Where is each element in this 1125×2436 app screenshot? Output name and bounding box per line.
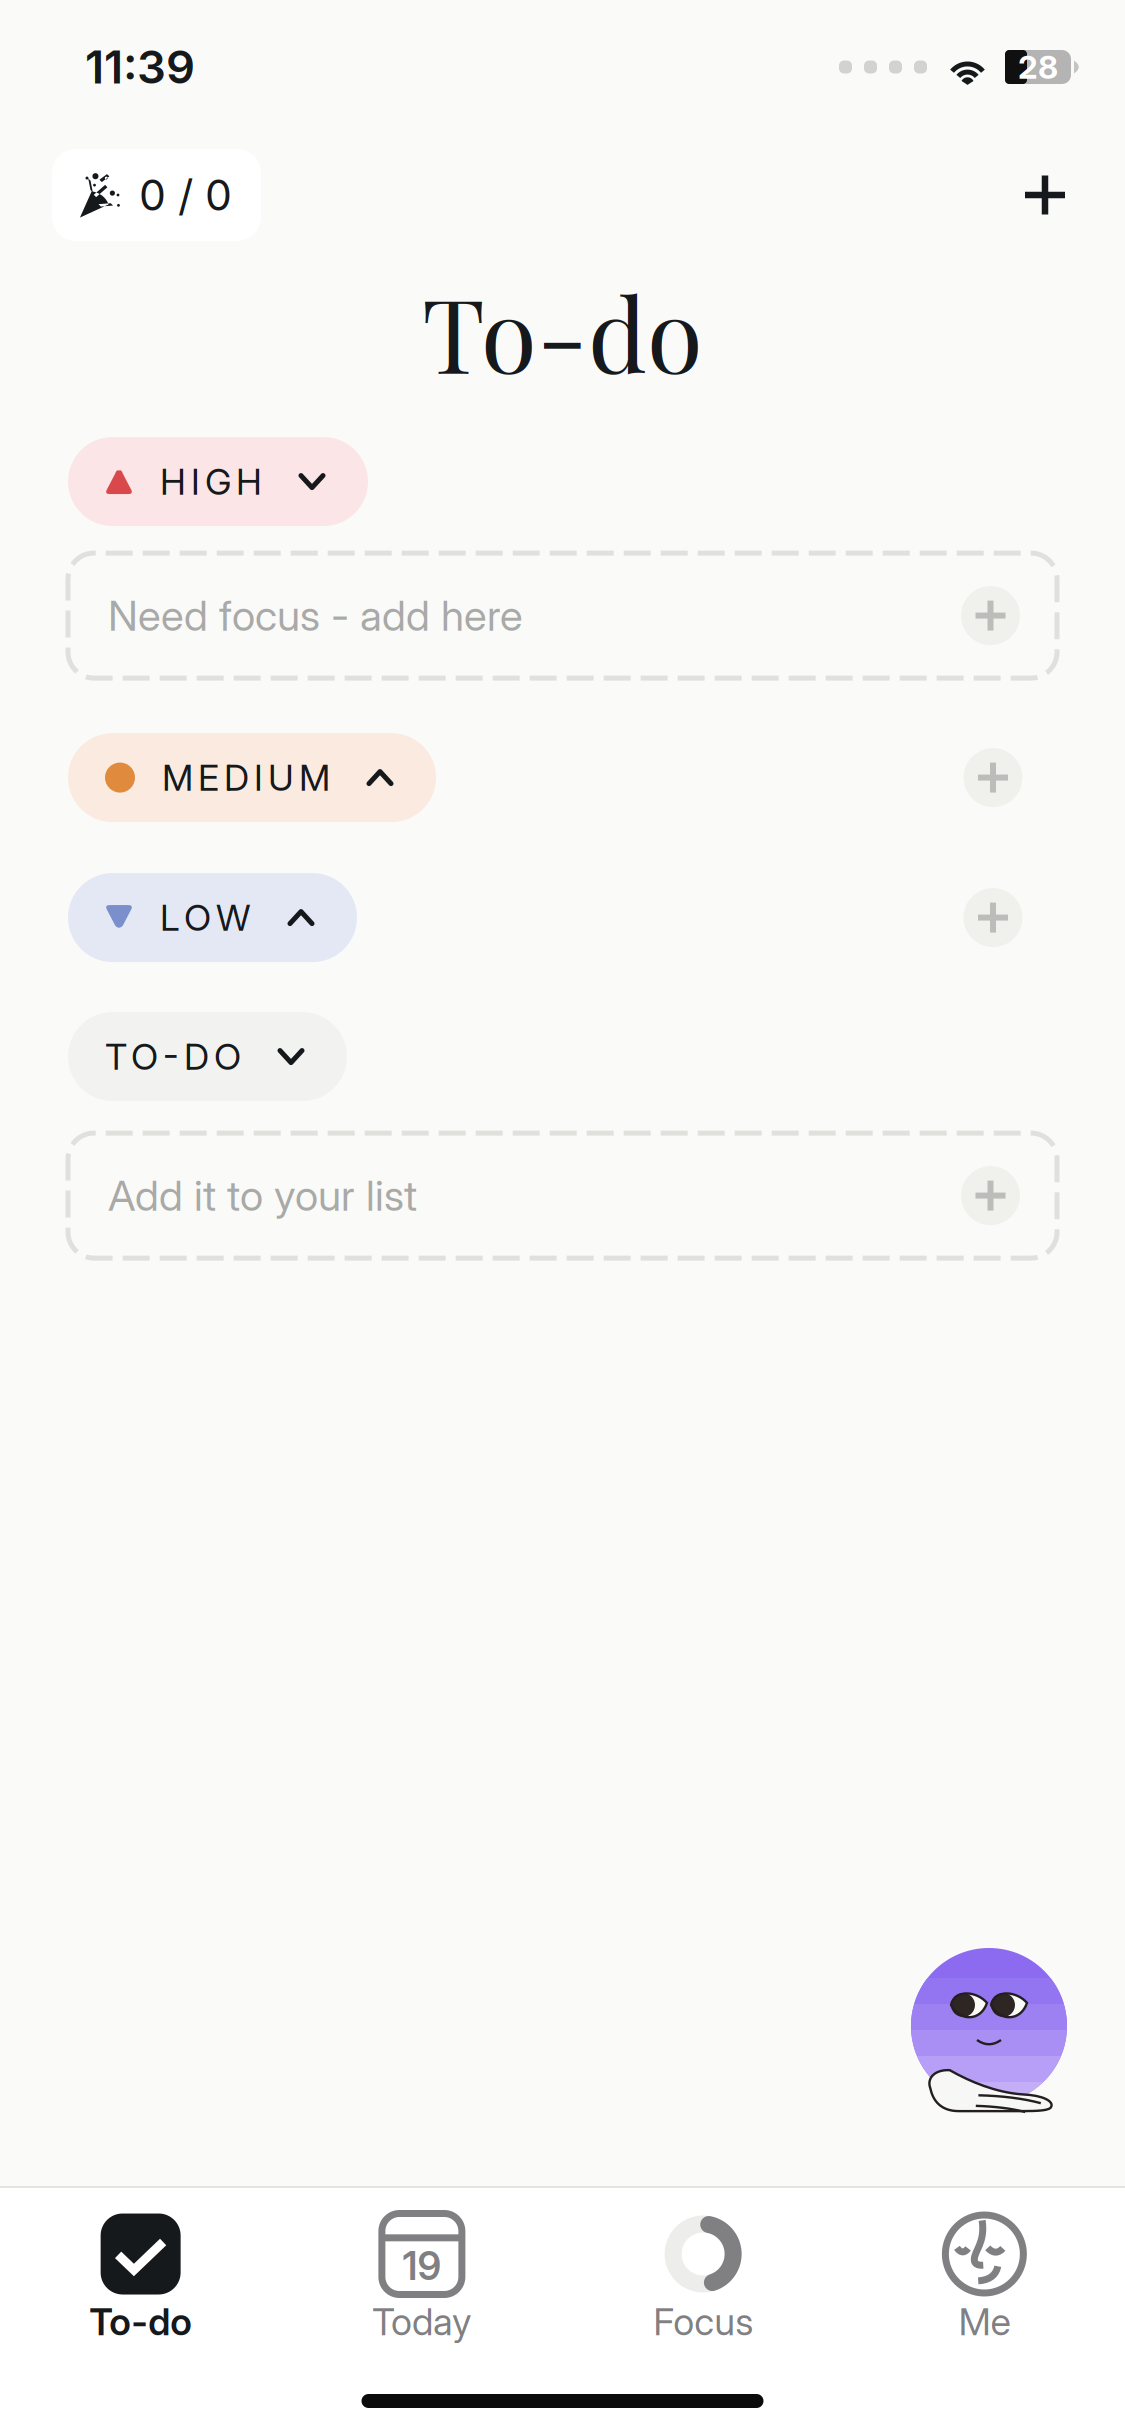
- staticText: HIGH: [160, 460, 262, 503]
- button[interactable]: Me: [844, 2213, 1125, 2344]
- button[interactable]: 19: [281, 2213, 562, 2344]
- staticText: TO-DO: [105, 1035, 241, 1078]
- staticText: 28: [1018, 48, 1058, 86]
- button[interactable]: Assistant: [911, 1948, 1067, 2138]
- staticText: Me: [958, 2299, 1010, 2344]
- button[interactable]: HIGH: [68, 437, 368, 526]
- staticText: To-do: [422, 264, 703, 399]
- button[interactable]: 0 / 0: [52, 149, 261, 241]
- staticText: Add it to your list: [108, 1170, 417, 1221]
- button[interactable]: Focus: [562, 2213, 844, 2344]
- staticText: MEDIUM: [162, 756, 330, 799]
- button[interactable]: Need focus - add here: [68, 553, 1057, 678]
- button[interactable]: Add task: [949, 734, 1037, 822]
- staticText: To-do: [89, 2299, 192, 2344]
- button[interactable]: Add task: [997, 147, 1093, 243]
- button[interactable]: MEDIUM: [68, 733, 436, 822]
- button[interactable]: To-do: [0, 2213, 281, 2344]
- staticText: Today: [372, 2299, 472, 2344]
- staticText: 0 / 0: [139, 169, 232, 221]
- button[interactable]: Add task: [949, 874, 1037, 962]
- staticText: LOW: [160, 896, 251, 939]
- button[interactable]: Add it to your list: [68, 1133, 1057, 1258]
- button[interactable]: TO-DO: [68, 1012, 347, 1101]
- staticText: Need focus - add here: [108, 590, 523, 641]
- staticText: 19: [402, 2243, 441, 2289]
- button[interactable]: LOW: [68, 873, 357, 962]
- staticText: 11:39: [85, 40, 195, 94]
- staticText: Focus: [653, 2299, 753, 2344]
